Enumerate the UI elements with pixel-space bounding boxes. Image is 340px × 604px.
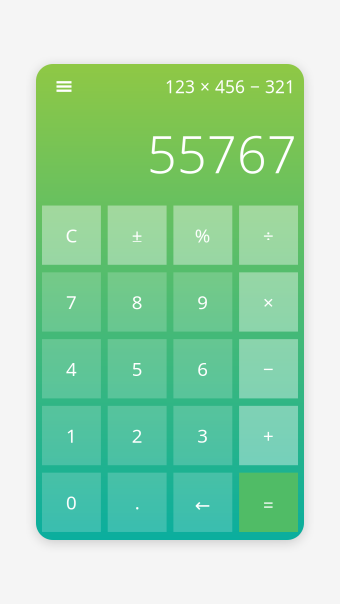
staticText: 2	[132, 423, 143, 448]
button[interactable]: Equals	[239, 473, 298, 532]
staticText: 3	[197, 423, 208, 448]
staticText: +	[263, 423, 274, 448]
staticText: 1	[66, 423, 77, 448]
button[interactable]: Decimal point	[108, 473, 167, 532]
button[interactable]: Toggle sign	[108, 205, 167, 265]
staticText: 0	[66, 490, 77, 515]
staticText: ×	[263, 290, 274, 314]
button[interactable]: 0	[42, 473, 101, 532]
button[interactable]: Menu	[47, 73, 81, 99]
staticText: 9	[197, 290, 208, 314]
staticText: 6	[197, 356, 208, 381]
button[interactable]: Multiply	[239, 272, 298, 332]
button[interactable]: Clear	[42, 205, 101, 265]
button[interactable]: 7	[42, 272, 101, 332]
staticText: ←	[195, 495, 211, 516]
button[interactable]: 5	[108, 339, 167, 398]
staticText: 7	[66, 290, 77, 314]
button[interactable]: Subtract	[239, 339, 298, 398]
staticText: ±	[132, 223, 143, 248]
staticText: 55767	[147, 118, 297, 187]
staticText: 123 × 456 − 321	[165, 75, 295, 98]
staticText: 4	[66, 356, 77, 381]
staticText: ÷	[263, 223, 274, 248]
staticText: =	[263, 492, 274, 517]
button[interactable]: Add	[239, 406, 298, 465]
button[interactable]: Divide	[239, 205, 298, 265]
button[interactable]: 2	[108, 406, 167, 465]
button[interactable]: 6	[173, 339, 232, 398]
staticText: 5	[132, 356, 143, 381]
button[interactable]: Backspace	[173, 473, 232, 532]
button[interactable]: Percent	[173, 205, 232, 265]
button[interactable]: 3	[173, 406, 232, 465]
staticText: .	[135, 490, 140, 515]
staticText: C	[65, 223, 77, 248]
button[interactable]: 8	[108, 272, 167, 332]
button[interactable]: 4	[42, 339, 101, 398]
staticText: %	[195, 223, 211, 248]
staticText: −	[263, 356, 274, 381]
button[interactable]: 1	[42, 406, 101, 465]
button[interactable]: 9	[173, 272, 232, 332]
staticText: 8	[132, 290, 143, 314]
